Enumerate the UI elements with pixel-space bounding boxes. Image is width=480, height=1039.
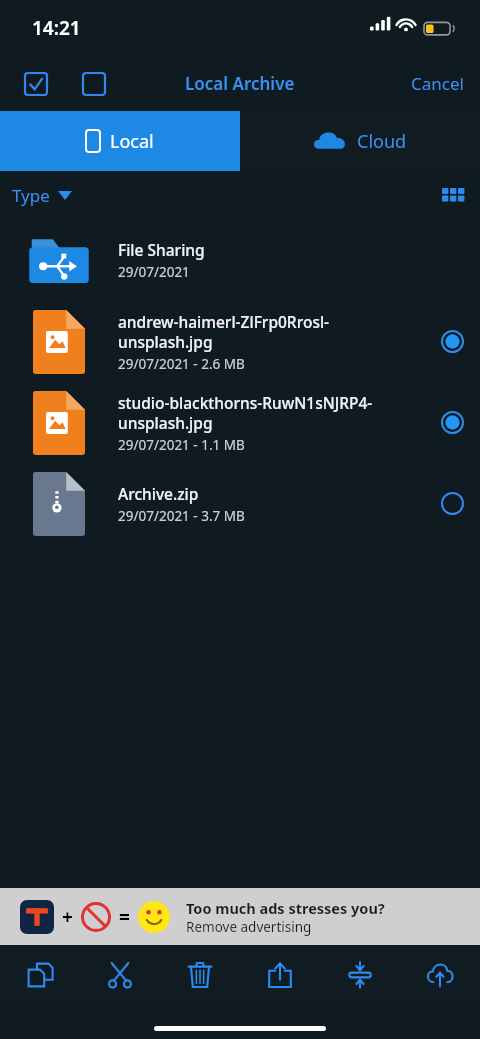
- button[interactable]: Upload to cloud: [400, 945, 480, 1005]
- button[interactable]: Selected: [424, 301, 480, 382]
- staticText: 29/07/2021 - 1.1 MB: [118, 436, 245, 454]
- button[interactable]: Share: [240, 945, 320, 1005]
- button[interactable]: Local: [0, 111, 240, 171]
- button[interactable]: studio-blackthorns-RuwN1sNJRP4- unsplash…: [0, 382, 480, 463]
- button[interactable]: Copy: [0, 945, 80, 1005]
- staticText: Archive.zip: [118, 483, 199, 504]
- staticText: 29/07/2021: [118, 263, 190, 281]
- staticText: studio-blackthorns-RuwN1sNJRP4- unsplash…: [118, 392, 373, 433]
- button[interactable]: Deselect all: [74, 64, 114, 104]
- staticText: 29/07/2021 - 2.6 MB: [118, 355, 245, 373]
- button[interactable]: Not selected: [424, 463, 480, 544]
- button[interactable]: Grid view: [428, 178, 480, 213]
- staticText: 14:21: [32, 15, 81, 41]
- staticText: Local Archive: [185, 72, 295, 95]
- button[interactable]: Selected: [424, 382, 480, 463]
- staticText: Local: [110, 129, 154, 154]
- staticText: Cancel: [411, 72, 464, 95]
- staticText: File Sharing: [118, 239, 205, 260]
- staticText: Cloud: [357, 129, 407, 154]
- staticText: +: [62, 904, 73, 930]
- button[interactable]: Cloud: [240, 111, 480, 171]
- button[interactable]: Type: [0, 176, 84, 215]
- button[interactable]: File Sharing: [0, 219, 480, 301]
- staticText: 29/07/2021 - 3.7 MB: [118, 507, 245, 525]
- button[interactable]: Cancel: [395, 62, 480, 105]
- staticText: =: [119, 904, 130, 930]
- button[interactable]: Select all: [16, 64, 56, 104]
- staticText: Too much ads stresses you?: [186, 898, 385, 918]
- staticText: Type: [12, 184, 50, 207]
- button[interactable]: Cut: [80, 945, 160, 1005]
- button[interactable]: Delete: [160, 945, 240, 1005]
- button[interactable]: Compress: [320, 945, 400, 1005]
- button[interactable]: Archive.zip: [0, 463, 480, 544]
- staticText: Remove advertising: [186, 918, 312, 936]
- button[interactable]: andrew-haimerl-ZlFrp0Rrosl- unsplash.jpg: [0, 301, 480, 382]
- button[interactable]: +: [0, 888, 480, 945]
- staticText: andrew-haimerl-ZlFrp0Rrosl- unsplash.jpg: [118, 311, 330, 352]
